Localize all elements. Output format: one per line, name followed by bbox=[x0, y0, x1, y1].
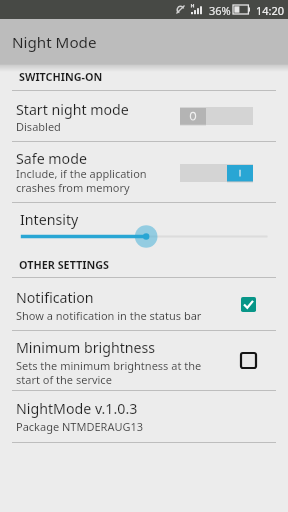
staticText: Night Mode bbox=[12, 32, 97, 53]
staticText: OTHER SETTINGS bbox=[19, 257, 110, 272]
staticText: 14:20 bbox=[256, 3, 285, 18]
staticText: 36% bbox=[209, 3, 231, 18]
staticText: Sets the minimum brightness at the bbox=[16, 358, 202, 373]
staticText: Notification bbox=[16, 288, 94, 307]
staticText: crashes from memory bbox=[16, 180, 130, 195]
staticText: Show a notification in the status bar bbox=[16, 308, 202, 323]
button[interactable]: Checked bbox=[241, 297, 256, 312]
staticText: Package NTMDERAUG13 bbox=[16, 419, 144, 434]
button[interactable]: Switch off bbox=[180, 107, 253, 125]
staticText: start of the service bbox=[16, 372, 112, 387]
button[interactable] bbox=[0, 282, 288, 329]
staticText: Disabled bbox=[16, 119, 61, 134]
staticText: NightMode v.1.0.3 bbox=[16, 399, 138, 418]
staticText: Include, if the application bbox=[16, 166, 147, 181]
staticText: SWITCHING-ON bbox=[19, 69, 103, 84]
button[interactable]: Unchecked bbox=[241, 353, 256, 368]
button[interactable] bbox=[0, 332, 288, 389]
staticText: Minimum brightness bbox=[16, 338, 156, 357]
staticText: Start night mode bbox=[16, 100, 129, 119]
button[interactable]: Intensity slider bbox=[0, 204, 288, 248]
staticText: Intensity bbox=[20, 210, 79, 229]
button[interactable]: Switch on bbox=[180, 164, 253, 182]
button[interactable] bbox=[0, 392, 288, 441]
button[interactable] bbox=[0, 143, 288, 201]
staticText: Safe mode bbox=[16, 149, 87, 168]
button[interactable] bbox=[0, 94, 288, 140]
